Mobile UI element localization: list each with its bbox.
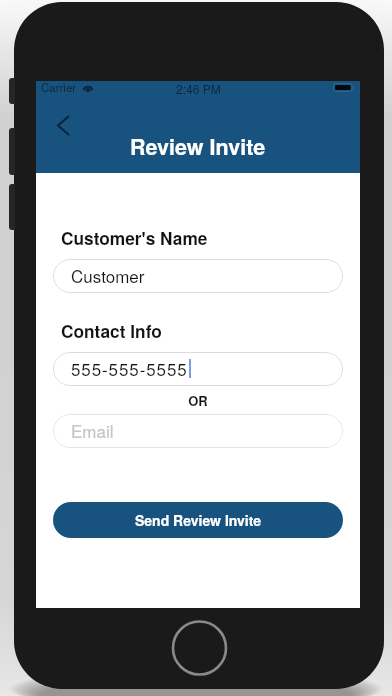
staticText: Send Review Invite: [135, 510, 262, 530]
staticText: OR: [36, 391, 360, 410]
staticText: 555-555-5555: [71, 356, 188, 380]
button[interactable]: Send Review Invite: [53, 502, 343, 538]
staticText: Contact Info: [61, 319, 162, 344]
button[interactable]: Email: [53, 414, 343, 448]
staticText: Review Invite: [130, 131, 266, 162]
staticText: Customer's Name: [61, 226, 208, 251]
staticText: 2:46 PM: [176, 80, 221, 97]
button[interactable]: Back: [44, 104, 82, 146]
staticText: Email: [71, 418, 114, 442]
button[interactable]: Customer: [53, 259, 343, 293]
button[interactable]: 555-555-5555: [53, 352, 343, 386]
staticText: Customer: [71, 263, 145, 287]
staticText: Carrier: [41, 79, 77, 95]
